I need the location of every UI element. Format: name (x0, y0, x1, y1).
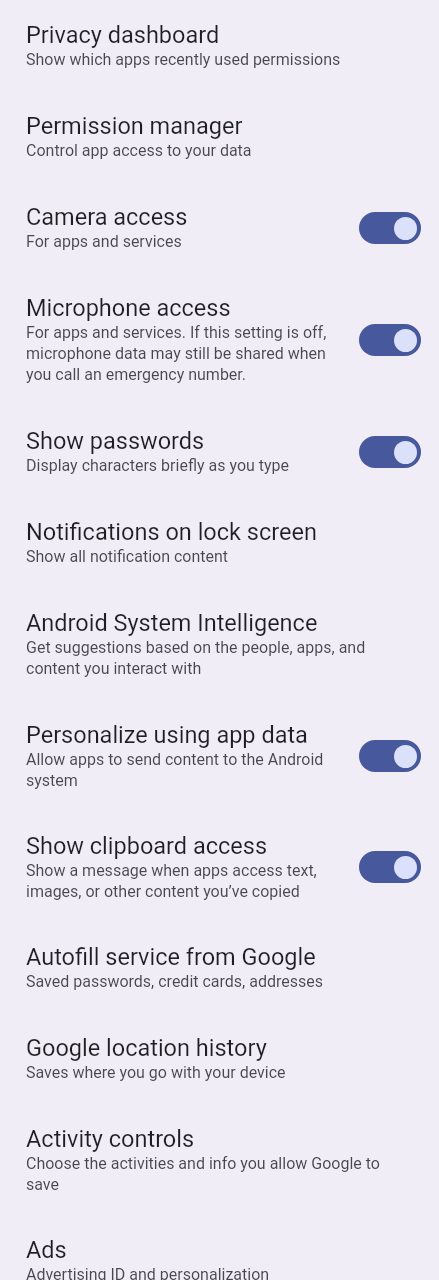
staticText: Show which apps recently used permission… (26, 50, 341, 69)
button[interactable] (359, 324, 421, 356)
staticText: Show a message when apps access text, im… (26, 861, 317, 901)
staticText: Choose the activities and info you allow… (26, 1154, 380, 1194)
button[interactable]: Microphone access (0, 273, 439, 406)
button[interactable] (359, 212, 421, 244)
staticText: Saves where you go with your device (26, 1063, 286, 1082)
staticText: Saved passwords, credit cards, addresses (26, 972, 323, 991)
staticText: Show clipboard access (26, 832, 268, 860)
button[interactable]: Privacy dashboard (0, 0, 439, 91)
staticText: Ads (26, 1236, 67, 1264)
button[interactable]: Notifications on lock screen (0, 497, 439, 588)
staticText: For apps and services (26, 232, 182, 251)
button[interactable]: Autofill service from Google (0, 922, 439, 1013)
staticText: Notifications on lock screen (26, 518, 317, 546)
staticText: Autofill service from Google (26, 943, 316, 971)
button[interactable]: Google location history (0, 1013, 439, 1104)
staticText: Personalize using app data (26, 721, 308, 749)
button[interactable]: Show clipboard access (0, 811, 439, 922)
button[interactable]: Show passwords (0, 406, 439, 497)
staticText: Control app access to your data (26, 141, 252, 160)
button[interactable]: Permission manager (0, 91, 439, 182)
button[interactable]: Activity controls (0, 1104, 439, 1215)
staticText: For apps and services. If this setting i… (26, 323, 327, 384)
staticText: Camera access (26, 203, 188, 231)
staticText: Get suggestions based on the people, app… (26, 638, 366, 678)
staticText: Display characters briefly as you type (26, 456, 290, 475)
button[interactable] (359, 436, 421, 468)
staticText: Android System Intelligence (26, 609, 318, 637)
button[interactable]: Ads (0, 1215, 439, 1280)
button[interactable] (359, 851, 421, 883)
staticText: Google location history (26, 1034, 267, 1062)
button[interactable]: Android System Intelligence (0, 588, 439, 700)
staticText: Show passwords (26, 427, 205, 455)
button[interactable]: Personalize using app data (0, 700, 439, 811)
staticText: Show all notification content (26, 547, 229, 566)
staticText: Privacy dashboard (26, 21, 220, 49)
staticText: Allow apps to send content to the Androi… (26, 750, 324, 790)
staticText: Microphone access (26, 294, 231, 322)
staticText: Advertising ID and personalization (26, 1265, 270, 1280)
button[interactable] (359, 740, 421, 772)
staticText: Activity controls (26, 1125, 195, 1153)
button[interactable]: Camera access (0, 182, 439, 273)
staticText: Permission manager (26, 112, 243, 140)
